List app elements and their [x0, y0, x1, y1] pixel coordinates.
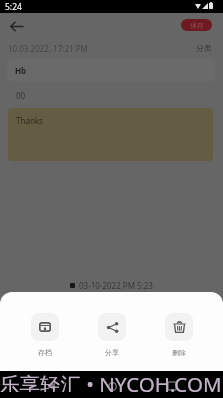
- staticText: 分类: [196, 43, 212, 53]
- button[interactable]: Recents: [162, 376, 182, 396]
- staticText: 删除: [172, 348, 186, 357]
- button[interactable]: Home: [102, 376, 122, 396]
- staticText: 乐享轻汇 • NYCQH.COM: [0, 370, 222, 392]
- button[interactable]: 删除: [145, 313, 212, 357]
- button[interactable]: Hb: [7, 59, 215, 81]
- button[interactable]: 分类: [196, 43, 212, 53]
- staticText: Hb: [15, 65, 27, 76]
- button[interactable]: 分享: [78, 313, 145, 357]
- button[interactable]: 保存: [181, 19, 212, 31]
- staticText: 10.03.2022, 17:21 PM: [8, 43, 88, 54]
- staticText: 00: [16, 90, 26, 101]
- staticText: 分享: [105, 348, 119, 357]
- button[interactable]: 存档: [11, 313, 78, 357]
- button[interactable]: Back: [6, 16, 26, 36]
- button[interactable]: Back: [41, 376, 61, 396]
- staticText: 存档: [38, 348, 52, 357]
- staticText: 03-10-2022 PM 5:23: [79, 280, 153, 291]
- staticText: 5:24: [5, 1, 22, 13]
- staticText: 保存: [190, 21, 204, 30]
- staticText: Thanks: [16, 115, 43, 126]
